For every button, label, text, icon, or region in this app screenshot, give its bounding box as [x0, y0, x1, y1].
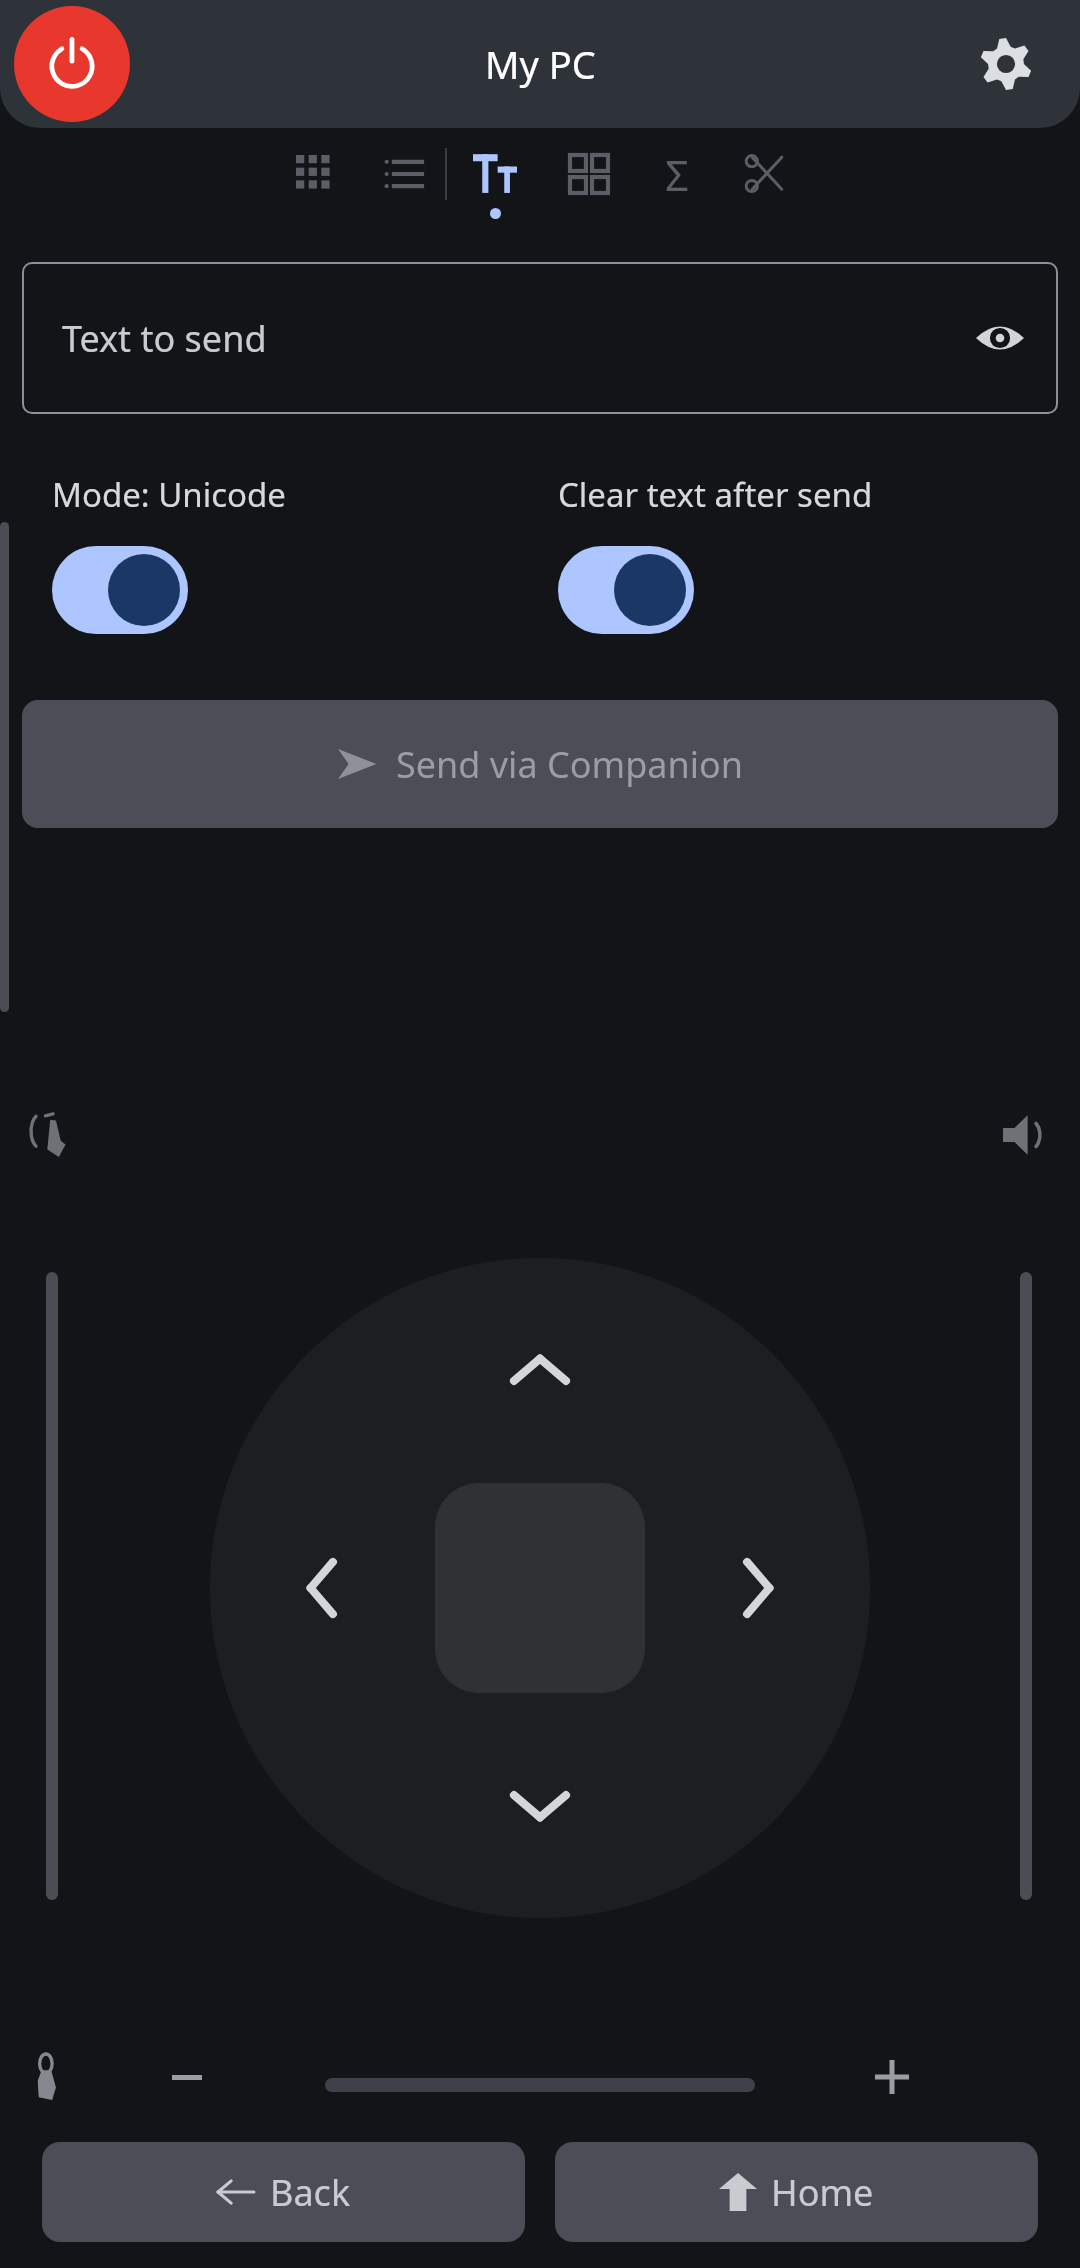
staticText: Σ	[665, 146, 690, 203]
button[interactable]: Tap	[18, 2040, 92, 2114]
button[interactable]: Tab	[557, 142, 621, 206]
button[interactable]: Tab	[733, 142, 797, 206]
button[interactable]: Send via Companion	[22, 700, 1058, 828]
button[interactable]: Right	[702, 1533, 812, 1643]
button[interactable]: Left	[268, 1533, 378, 1643]
button[interactable]: Tab	[645, 142, 709, 206]
staticText: Text to send	[62, 314, 267, 363]
staticText: Back	[270, 2168, 351, 2217]
button[interactable]: Volume	[990, 1100, 1060, 1170]
button[interactable]: Text mode	[463, 142, 527, 206]
button[interactable]: Text to send	[22, 262, 1058, 414]
button[interactable]: Show text	[964, 302, 1036, 374]
button[interactable]: Home	[555, 2142, 1038, 2242]
button[interactable]: Down	[485, 1750, 595, 1860]
button[interactable]: Slider	[325, 2078, 755, 2092]
button[interactable]: Tab	[283, 142, 347, 206]
button[interactable]: Tab	[371, 142, 435, 206]
button[interactable]: OK	[435, 1483, 645, 1693]
button[interactable]: Toggle	[558, 546, 694, 634]
button[interactable]: Decrease	[150, 2040, 224, 2114]
button[interactable]: Power	[14, 6, 130, 122]
button[interactable]: Increase	[855, 2040, 929, 2114]
staticText: Clear text after send	[558, 472, 873, 517]
staticText: Home	[771, 2168, 874, 2217]
button[interactable]: Up	[485, 1316, 595, 1426]
button[interactable]: Back	[42, 2142, 525, 2242]
button[interactable]: Toggle	[52, 546, 188, 634]
button[interactable]: Gesture	[20, 1100, 90, 1170]
staticText: My PC	[485, 38, 596, 90]
button[interactable]: Settings	[966, 24, 1046, 104]
staticText: Mode: Unicode	[52, 472, 286, 517]
staticText: Send via Companion	[396, 740, 744, 789]
